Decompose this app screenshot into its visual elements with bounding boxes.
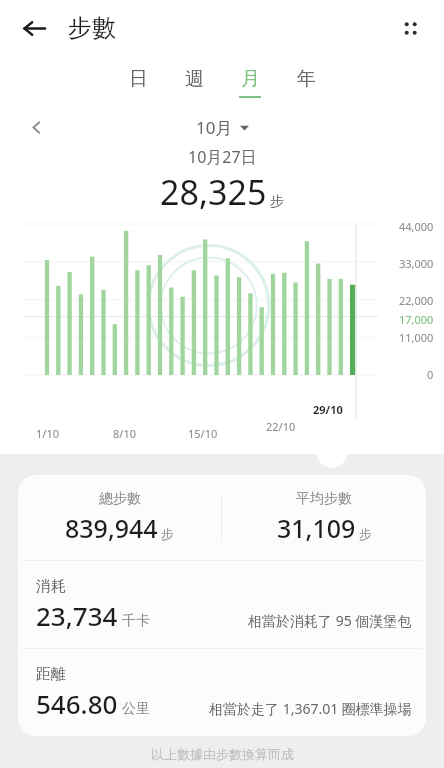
staticText: 公里	[122, 700, 150, 718]
button[interactable]: 日	[110, 57, 166, 107]
staticText: 44,000	[399, 219, 434, 234]
button[interactable]: 消耗	[36, 561, 412, 648]
staticText: 以上數據由步數換算而成	[151, 746, 294, 762]
staticText: 距離	[36, 665, 66, 684]
button[interactable]: 週	[166, 57, 222, 107]
staticText: 年	[297, 67, 316, 91]
staticText: 步	[270, 193, 284, 211]
staticText: 22/10	[266, 419, 296, 434]
staticText: 週	[185, 67, 204, 91]
button[interactable]: 距離	[36, 649, 412, 736]
staticText: 10月	[196, 116, 233, 139]
staticText: 步	[161, 526, 174, 542]
button[interactable]: More options	[388, 6, 432, 50]
staticText: 步	[359, 526, 372, 542]
staticText: 千卡	[122, 612, 150, 630]
staticText: 17,000	[399, 312, 434, 327]
staticText: 8/10	[113, 426, 136, 441]
staticText: 消耗	[36, 577, 66, 596]
staticText: 1/10	[36, 426, 59, 441]
staticText: 22,000	[399, 293, 434, 308]
button[interactable]: 平均步數	[222, 475, 426, 560]
staticText: 15/10	[188, 426, 218, 441]
staticText: 日	[129, 67, 148, 91]
button[interactable]: 月	[222, 57, 278, 107]
button[interactable]: 10月	[196, 116, 249, 139]
staticText: 步數	[68, 13, 116, 43]
staticText: 839,944	[65, 511, 158, 545]
staticText: 546.80	[36, 686, 118, 721]
staticText: 29/10	[313, 402, 343, 417]
button[interactable]: Previous month	[20, 111, 52, 143]
staticText: 33,000	[399, 256, 434, 271]
staticText: 0	[427, 367, 434, 382]
staticText: 相當於消耗了 95 個漢堡包	[248, 611, 412, 630]
staticText: 相當於走了 1,367.01 圈標準操場	[209, 699, 412, 718]
button[interactable]: Back	[12, 6, 56, 50]
staticText: 31,109	[277, 511, 356, 545]
staticText: 總步數	[99, 490, 141, 508]
staticText: 平均步數	[296, 490, 352, 508]
button[interactable]: 總步數	[18, 475, 221, 560]
staticText: 11,000	[399, 330, 434, 345]
staticText: 28,325	[160, 169, 267, 215]
button[interactable]: 年	[278, 57, 334, 107]
staticText: 23,734	[36, 598, 118, 633]
staticText: 10月27日	[188, 146, 257, 168]
staticText: 月	[241, 67, 260, 91]
